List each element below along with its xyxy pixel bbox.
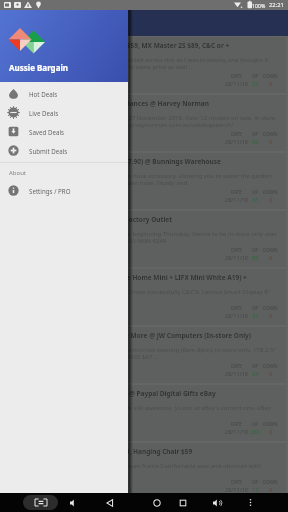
staticText: UP	[252, 73, 259, 79]
staticText: 0	[269, 312, 273, 319]
button[interactable]: Submit Deals	[0, 141, 128, 160]
staticText: 28/11/18	[225, 312, 248, 319]
staticText: UP	[252, 421, 259, 427]
staticText: Settings / PRO	[29, 187, 71, 195]
staticText: 28/11/18	[225, 196, 248, 203]
staticText: 28/11/18	[225, 80, 248, 87]
button[interactable]: Hot Deals	[0, 84, 128, 103]
staticText: UP	[252, 363, 259, 369]
button[interactable]: Back	[101, 493, 119, 512]
staticText: Live Deals	[29, 109, 59, 117]
button[interactable]: 30% off Storewide for 4 Days @ Nike Fact…	[2, 211, 286, 267]
staticText: Gardeon 4 Piece Wicker Lightweight alumi…	[7, 462, 281, 477]
staticText: Not quite as good as the 10% deal but th…	[7, 404, 281, 419]
staticText: Submit Deals	[29, 147, 68, 155]
staticText: JW Computers is having a Wednesday sale …	[7, 346, 281, 361]
staticText: UP	[252, 247, 259, 253]
staticText: DOWN	[263, 189, 278, 195]
staticText: DATE	[231, 73, 242, 79]
button[interactable]: Pope 10m Auto Hose Reel $38 (was $57.90)…	[2, 153, 286, 209]
staticText: The Pope Auto Hose Reel is the ideal gar…	[7, 172, 281, 187]
staticText: Pope 10m Auto Hose Reel $38 (was $57.90)…	[7, 157, 221, 166]
button[interactable]: Gardeon 4 Piece Outdoor Setting $299, Ha…	[2, 443, 286, 499]
button[interactable]: More options	[241, 493, 259, 512]
staticText: 31	[252, 312, 259, 319]
staticText: UP	[252, 189, 259, 195]
staticText: 56	[252, 138, 259, 145]
staticText: UP	[252, 131, 259, 137]
staticText: DOWN	[263, 73, 278, 79]
button[interactable]: Saved Deals	[0, 122, 128, 141]
staticText: DOWN	[263, 421, 278, 427]
button[interactable]: Volume down	[65, 493, 83, 512]
staticText: 0	[269, 486, 273, 493]
staticText: DOWN	[263, 247, 278, 253]
staticText: Google Home Hub $329 (Bonus Google Home …	[7, 273, 247, 282]
staticText: DATE	[231, 247, 242, 253]
staticText: 28/11/18	[225, 486, 248, 493]
staticText: 260	[250, 428, 260, 435]
button[interactable]: Settings / PRO	[0, 181, 128, 200]
staticText: 22:21	[269, 1, 284, 9]
staticText: 31	[252, 196, 259, 203]
staticText: 28/11/18	[225, 254, 248, 261]
button[interactable]: Volume up	[208, 493, 226, 512]
staticText: 28/11/18	[225, 138, 248, 145]
staticText: 23	[252, 80, 259, 87]
staticText: Gardeon 4 Piece Outdoor Setting $299, Ha…	[7, 447, 193, 456]
staticText: 0	[269, 370, 273, 377]
staticText: DATE	[231, 189, 242, 195]
staticText: Just a reminder that JB deals are stacka…	[7, 288, 281, 303]
staticText: 12	[252, 486, 259, 493]
staticText: DOWN	[263, 305, 278, 311]
staticText: Aussie Bargain	[9, 62, 69, 73]
staticText: UP	[252, 479, 259, 485]
staticText: DATE	[231, 131, 242, 137]
staticText: 24	[252, 370, 259, 377]
button[interactable]: 10% off eBay Gift Cards (Max 5 Cards) @ …	[2, 385, 286, 441]
staticText: 0	[269, 196, 273, 203]
staticText: DOWN	[263, 363, 278, 369]
staticText: DATE	[231, 363, 242, 369]
staticText: 0	[269, 138, 273, 145]
staticText: This sale is on now at Harvey Norman unt…	[7, 114, 281, 129]
staticText: Fisher & Paykel 20% off Selected Applian…	[7, 99, 209, 108]
button[interactable]: Live Deals	[0, 103, 128, 122]
staticText: 28/11/18	[225, 370, 248, 377]
staticText: DOWN	[263, 131, 278, 137]
staticText: Seagate 2TB Expansion Portable $67 + Mor…	[7, 331, 252, 340]
staticText: I hope I haven't done anything wrong. St…	[7, 56, 281, 71]
button[interactable]: Fisher & Paykel 20% off Selected Applian…	[2, 95, 286, 151]
staticText: 0	[269, 80, 273, 87]
staticText: 100%	[252, 2, 266, 9]
button[interactable]: Recent apps	[174, 493, 192, 512]
staticText: About	[9, 169, 27, 177]
staticText: 10% off eBay Gift Cards (Max 5 Cards) @ …	[7, 389, 216, 398]
staticText: DATE	[231, 421, 242, 427]
staticText: UP	[252, 305, 259, 311]
staticText: DATE	[231, 305, 242, 311]
staticText: 30% off Storewide for 4 Days @ Nike Fact…	[7, 215, 173, 224]
staticText: 95	[252, 254, 259, 261]
button[interactable]: Logitech MX Anywhere 2S (Graphite) $59, …	[2, 37, 286, 93]
button[interactable]: Seagate 2TB Expansion Portable $67 + Mor…	[2, 327, 286, 383]
staticText: DATE	[231, 479, 242, 485]
staticText: DOWN	[263, 479, 278, 485]
staticText: 0	[269, 254, 273, 261]
button[interactable]: Home	[148, 493, 166, 512]
staticText: 28/11/18	[225, 428, 248, 435]
staticText: Hot Deals	[29, 90, 58, 98]
staticText: 0	[269, 428, 273, 435]
button[interactable]: Switch keyboard	[23, 495, 58, 510]
staticText: Nike have announced their Black Friday s…	[7, 230, 281, 245]
button[interactable]: Google Home Hub $329 (Bonus Google Home …	[2, 269, 286, 325]
staticText: Saved Deals	[29, 128, 64, 136]
staticText: Logitech MX Anywhere 2S (Graphite) $59, …	[7, 41, 230, 50]
